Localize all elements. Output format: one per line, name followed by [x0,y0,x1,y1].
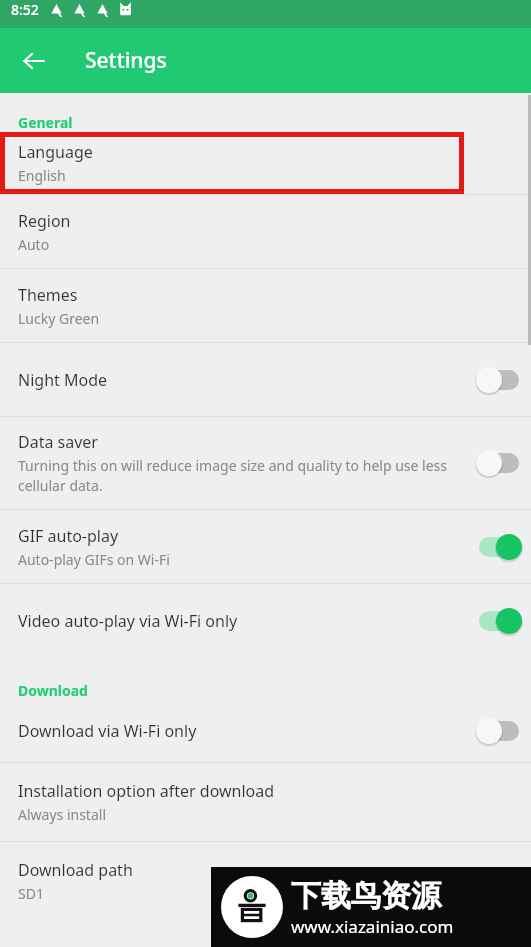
button[interactable]: Themes [0,269,531,342]
staticText: Night Mode [18,369,108,391]
staticText: Download via Wi-Fi only [18,720,197,742]
button[interactable]: Data saver [0,417,531,509]
staticText: GIF auto-play [18,525,119,547]
button[interactable]: Video auto-play via Wi-Fi only [0,584,531,657]
staticText: English [18,166,66,185]
button[interactable]: Back [10,37,58,85]
staticText: Auto [18,235,50,254]
staticText: Turning this on will reduce image size a… [18,456,467,495]
staticText: Lucky Green [18,309,100,328]
staticText: Download [18,681,88,700]
button[interactable]: Installation option after download [0,763,531,841]
staticText: Download path [18,859,133,881]
staticText: Language [18,141,93,163]
button[interactable]: GIF auto-play [0,510,531,583]
button[interactable]: Language [0,132,531,194]
button[interactable]: Download path [0,842,531,920]
staticText: 8:52 [11,0,39,19]
staticText: Video auto-play via Wi-Fi only [18,610,238,632]
staticText: Themes [18,284,78,306]
staticText: Data saver [18,431,98,453]
staticText: Always install [18,805,107,824]
button[interactable]: Download via Wi-Fi only [0,700,531,762]
staticText: SD1 [18,884,44,903]
staticText: 下载鸟资源 [291,877,441,915]
staticText: General [18,113,73,132]
staticText: Auto-play GIFs on Wi-Fi [18,550,170,569]
staticText: Settings [85,46,167,75]
staticText: Region [18,210,71,232]
staticText: Installation option after download [18,780,275,802]
staticText: www.xiazainiao.com [291,915,454,938]
button[interactable]: Night Mode [0,343,531,416]
button[interactable]: Region [0,195,531,268]
